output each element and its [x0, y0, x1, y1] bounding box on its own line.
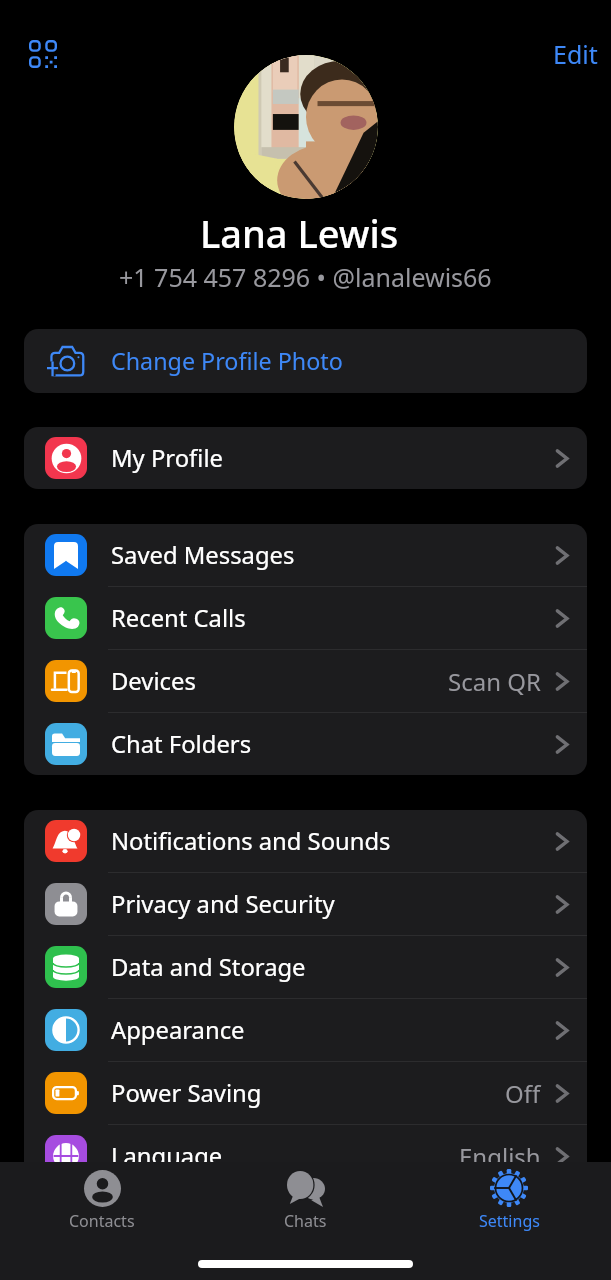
staticText: Data and Storage	[111, 951, 306, 983]
button[interactable]: My Profile	[24, 427, 587, 489]
button[interactable]: Contacts	[0, 1162, 203, 1244]
button[interactable]: Settings	[407, 1162, 611, 1244]
button[interactable]: Language	[24, 1125, 587, 1187]
button[interactable]: Notifications and Sounds	[24, 810, 587, 872]
button[interactable]: Edit	[540, 27, 611, 81]
button[interactable]: Appearance	[24, 999, 587, 1061]
button[interactable]: Saved Messages	[24, 524, 587, 586]
button[interactable]: Chat Folders	[24, 713, 587, 775]
button[interactable]: Chats	[203, 1162, 407, 1244]
staticText: Edit	[553, 37, 598, 71]
staticText: +1 754 457 8296 • @lanalewis66	[119, 260, 492, 294]
staticText: Power Saving	[111, 1077, 262, 1109]
button[interactable]: Change Profile Photo	[24, 329, 587, 393]
staticText: Lana Lewis	[200, 207, 399, 259]
staticText: Off	[505, 1077, 541, 1110]
staticText: Language	[111, 1140, 223, 1172]
staticText: Appearance	[111, 1014, 245, 1046]
staticText: Chats	[284, 1210, 327, 1232]
staticText: Change Profile Photo	[111, 345, 343, 377]
staticText: Saved Messages	[111, 539, 295, 571]
staticText: Notifications and Sounds	[111, 825, 391, 857]
staticText: Devices	[111, 665, 196, 697]
button[interactable]: Profile photo	[234, 55, 378, 199]
button[interactable]: Privacy and Security	[24, 873, 587, 935]
staticText: English	[459, 1140, 541, 1173]
staticText: Recent Calls	[111, 602, 246, 634]
staticText: My Profile	[111, 442, 223, 474]
staticText: Chat Folders	[111, 728, 252, 760]
button[interactable]: Devices	[24, 650, 587, 712]
button[interactable]: Power Saving	[24, 1062, 587, 1124]
button[interactable]: Recent Calls	[24, 587, 587, 649]
button[interactable]: QR code	[22, 33, 64, 75]
staticText: Privacy and Security	[111, 888, 335, 920]
staticText: Contacts	[69, 1210, 135, 1232]
staticText: Settings	[479, 1210, 540, 1232]
staticText: Scan QR	[448, 665, 541, 698]
button[interactable]: Data and Storage	[24, 936, 587, 998]
